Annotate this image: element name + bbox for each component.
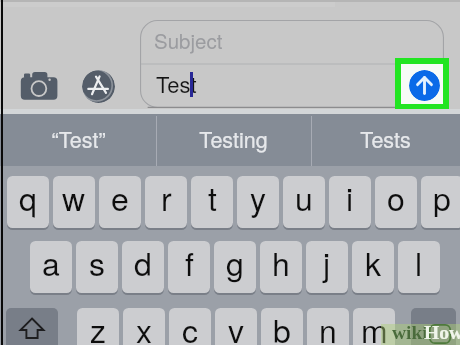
staticText: i — [346, 176, 354, 220]
staticText: w — [62, 176, 86, 220]
button[interactable]: s — [76, 241, 118, 293]
staticText: s — [89, 241, 106, 285]
staticText: y — [250, 176, 267, 220]
button[interactable]: Shift — [6, 308, 58, 345]
staticText: l — [415, 241, 423, 285]
button[interactable]: v — [215, 308, 257, 345]
staticText: Tests — [360, 123, 411, 154]
staticText: f — [185, 241, 194, 285]
staticText: t — [208, 176, 217, 220]
button[interactable]: Send — [409, 70, 440, 101]
staticText: Subject — [154, 25, 223, 54]
button[interactable]: e — [99, 176, 141, 228]
button[interactable]: m — [353, 308, 395, 345]
staticText: e — [111, 176, 129, 220]
button[interactable]: a — [30, 241, 72, 293]
staticText: d — [134, 241, 152, 285]
staticText: x — [136, 308, 153, 345]
button[interactable]: i — [329, 176, 371, 228]
staticText: “Test” — [51, 123, 106, 154]
button[interactable]: z — [77, 308, 119, 345]
button[interactable]: h — [260, 241, 302, 293]
staticText: How — [424, 322, 460, 344]
button[interactable]: k — [352, 241, 394, 293]
button[interactable]: “Test” — [0, 114, 156, 166]
button[interactable]: c — [169, 308, 211, 345]
button[interactable]: o — [375, 176, 417, 228]
button[interactable]: u — [283, 176, 325, 228]
button[interactable]: p — [421, 176, 460, 228]
button[interactable]: w — [53, 176, 95, 228]
staticText: Test — [156, 68, 197, 100]
button[interactable]: n — [307, 308, 349, 345]
button[interactable]: Backspace — [411, 308, 456, 345]
button[interactable]: t — [191, 176, 233, 228]
button[interactable]: x — [123, 308, 165, 345]
staticText: c — [182, 308, 199, 345]
staticText: m — [361, 308, 388, 345]
staticText: z — [90, 308, 107, 345]
button[interactable]: Take photo — [19, 70, 59, 102]
button[interactable]: q — [7, 176, 49, 228]
staticText: g — [226, 241, 244, 285]
button[interactable]: y — [237, 176, 279, 228]
button[interactable]: App Store — [82, 70, 115, 103]
staticText: u — [295, 176, 313, 220]
staticText: b — [273, 308, 291, 345]
staticText: j — [323, 241, 331, 285]
staticText: a — [42, 241, 60, 285]
button[interactable]: f — [168, 241, 210, 293]
staticText: k — [365, 241, 382, 285]
staticText: q — [19, 176, 37, 220]
button[interactable]: j — [306, 241, 348, 293]
staticText: h — [272, 241, 290, 285]
staticText: v — [228, 308, 245, 345]
staticText: p — [433, 176, 451, 220]
staticText: n — [319, 308, 337, 345]
button[interactable]: d — [122, 241, 164, 293]
staticText: wiki — [392, 322, 428, 344]
staticText: Testing — [199, 123, 268, 154]
staticText: r — [161, 176, 172, 220]
button[interactable]: g — [214, 241, 256, 293]
staticText: o — [387, 176, 405, 220]
button[interactable]: r — [145, 176, 187, 228]
button[interactable]: b — [261, 308, 303, 345]
button[interactable]: Tests — [311, 114, 460, 166]
button[interactable]: Testing — [156, 114, 311, 166]
button[interactable]: l — [398, 241, 440, 293]
